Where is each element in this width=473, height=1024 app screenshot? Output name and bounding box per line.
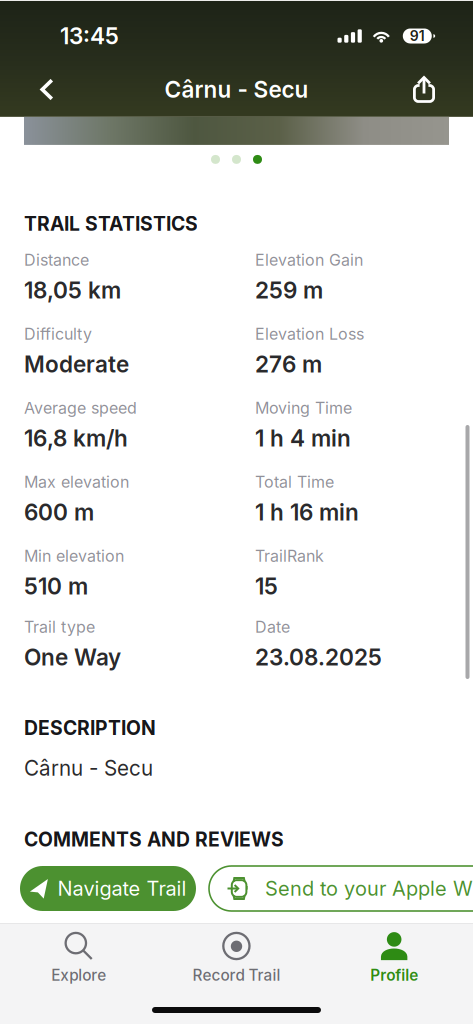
button[interactable]: Profile (315, 924, 473, 986)
staticText: Cârnu - Secu (24, 756, 153, 781)
staticText: Trail type (24, 617, 95, 637)
staticText: Total Time (255, 472, 334, 492)
button[interactable]: Record Trail (158, 924, 315, 986)
staticText: 16,8 km/h (24, 425, 128, 452)
staticText: 600 m (24, 499, 94, 526)
button[interactable]: Explore (0, 924, 158, 986)
staticText: Min elevation (24, 546, 124, 566)
staticText: 18,05 km (24, 277, 121, 304)
staticText: COMMENTS AND REVIEWS (24, 828, 284, 851)
staticText: Profile (370, 966, 418, 984)
button[interactable]: Back (18, 59, 76, 116)
button[interactable]: Navigate Trail (20, 866, 196, 911)
staticText: Moving Time (255, 398, 352, 418)
staticText: 1 h 4 min (255, 425, 351, 452)
staticText: 1 h 16 min (255, 499, 359, 526)
staticText: 23.08.2025 (255, 644, 382, 671)
staticText: One Way (24, 644, 121, 671)
staticText: Explore (51, 966, 106, 984)
staticText: TRAIL STATISTICS (24, 212, 198, 235)
staticText: Elevation Gain (255, 250, 363, 270)
staticText: Send to your Apple Watch (265, 876, 473, 901)
staticText: Distance (24, 250, 89, 270)
staticText: Navigate Trail (57, 876, 186, 901)
staticText: Max elevation (24, 472, 129, 492)
staticText: Cârnu - Secu (164, 76, 308, 103)
staticText: Average speed (24, 398, 137, 418)
staticText: 510 m (24, 573, 88, 600)
staticText: Difficulty (24, 324, 92, 344)
staticText: Record Trail (192, 966, 280, 984)
button[interactable]: Share (395, 59, 453, 116)
staticText: Moderate (24, 351, 129, 378)
staticText: Elevation Loss (255, 324, 364, 344)
button[interactable]: Send to your Apple Watch (209, 866, 473, 911)
staticText: 91 (410, 27, 425, 44)
staticText: 259 m (255, 277, 323, 304)
staticText: 13:45 (60, 22, 119, 50)
staticText: 276 m (255, 351, 322, 378)
staticText: DESCRIPTION (24, 716, 156, 740)
staticText: 15 (255, 573, 278, 600)
staticText: Date (255, 617, 290, 637)
staticText: TrailRank (255, 546, 324, 566)
